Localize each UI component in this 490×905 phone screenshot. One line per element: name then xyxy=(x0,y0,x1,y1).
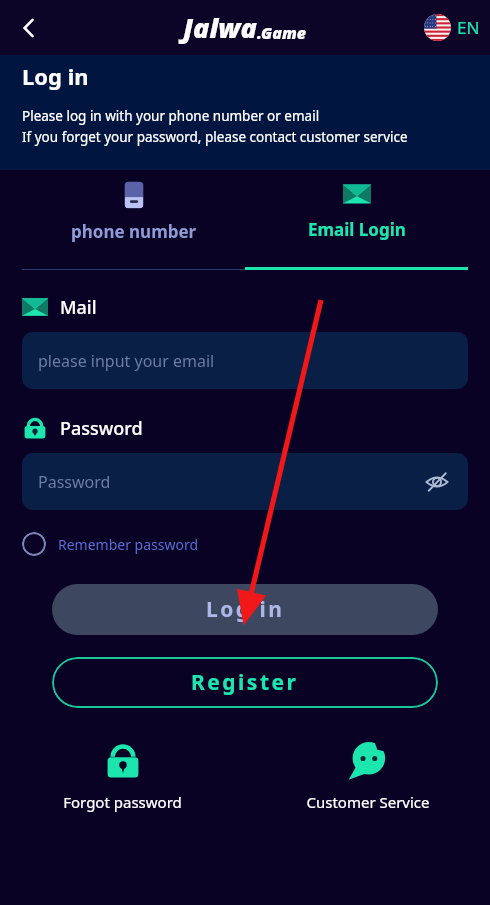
staticText: Remember password xyxy=(58,535,199,554)
staticText: Please log in with your phone number or … xyxy=(22,107,320,125)
button[interactable]: Forgot password xyxy=(0,738,245,812)
staticText: If you forget your password, please cont… xyxy=(22,128,408,146)
button[interactable]: Log in xyxy=(52,584,438,635)
staticText: Log in xyxy=(22,61,89,91)
staticText: Jalwa xyxy=(183,9,257,46)
button[interactable]: EN xyxy=(424,14,480,41)
button[interactable]: Back xyxy=(6,5,52,51)
button[interactable]: Customer Service xyxy=(245,738,490,812)
staticText: phone number xyxy=(71,220,197,243)
staticText: Log in xyxy=(206,595,285,624)
staticText: Password xyxy=(60,416,143,441)
button[interactable]: Remember password xyxy=(22,532,199,556)
button[interactable]: Password xyxy=(22,453,468,510)
staticText: Mail xyxy=(60,295,97,320)
staticText: Register xyxy=(191,668,299,697)
staticText: Customer Service xyxy=(306,792,430,812)
staticText: Email Login xyxy=(308,218,406,241)
staticText: Forgot password xyxy=(63,792,182,812)
button[interactable]: phone number xyxy=(22,170,245,270)
staticText: .Game xyxy=(257,22,307,44)
staticText: EN xyxy=(457,16,480,39)
button[interactable]: Show password xyxy=(422,467,452,497)
button[interactable]: Register xyxy=(52,657,438,708)
staticText: please input your email xyxy=(38,350,215,372)
button[interactable]: please input your email xyxy=(22,332,468,389)
button[interactable]: Email Login xyxy=(245,170,468,270)
staticText: Password xyxy=(38,471,111,493)
